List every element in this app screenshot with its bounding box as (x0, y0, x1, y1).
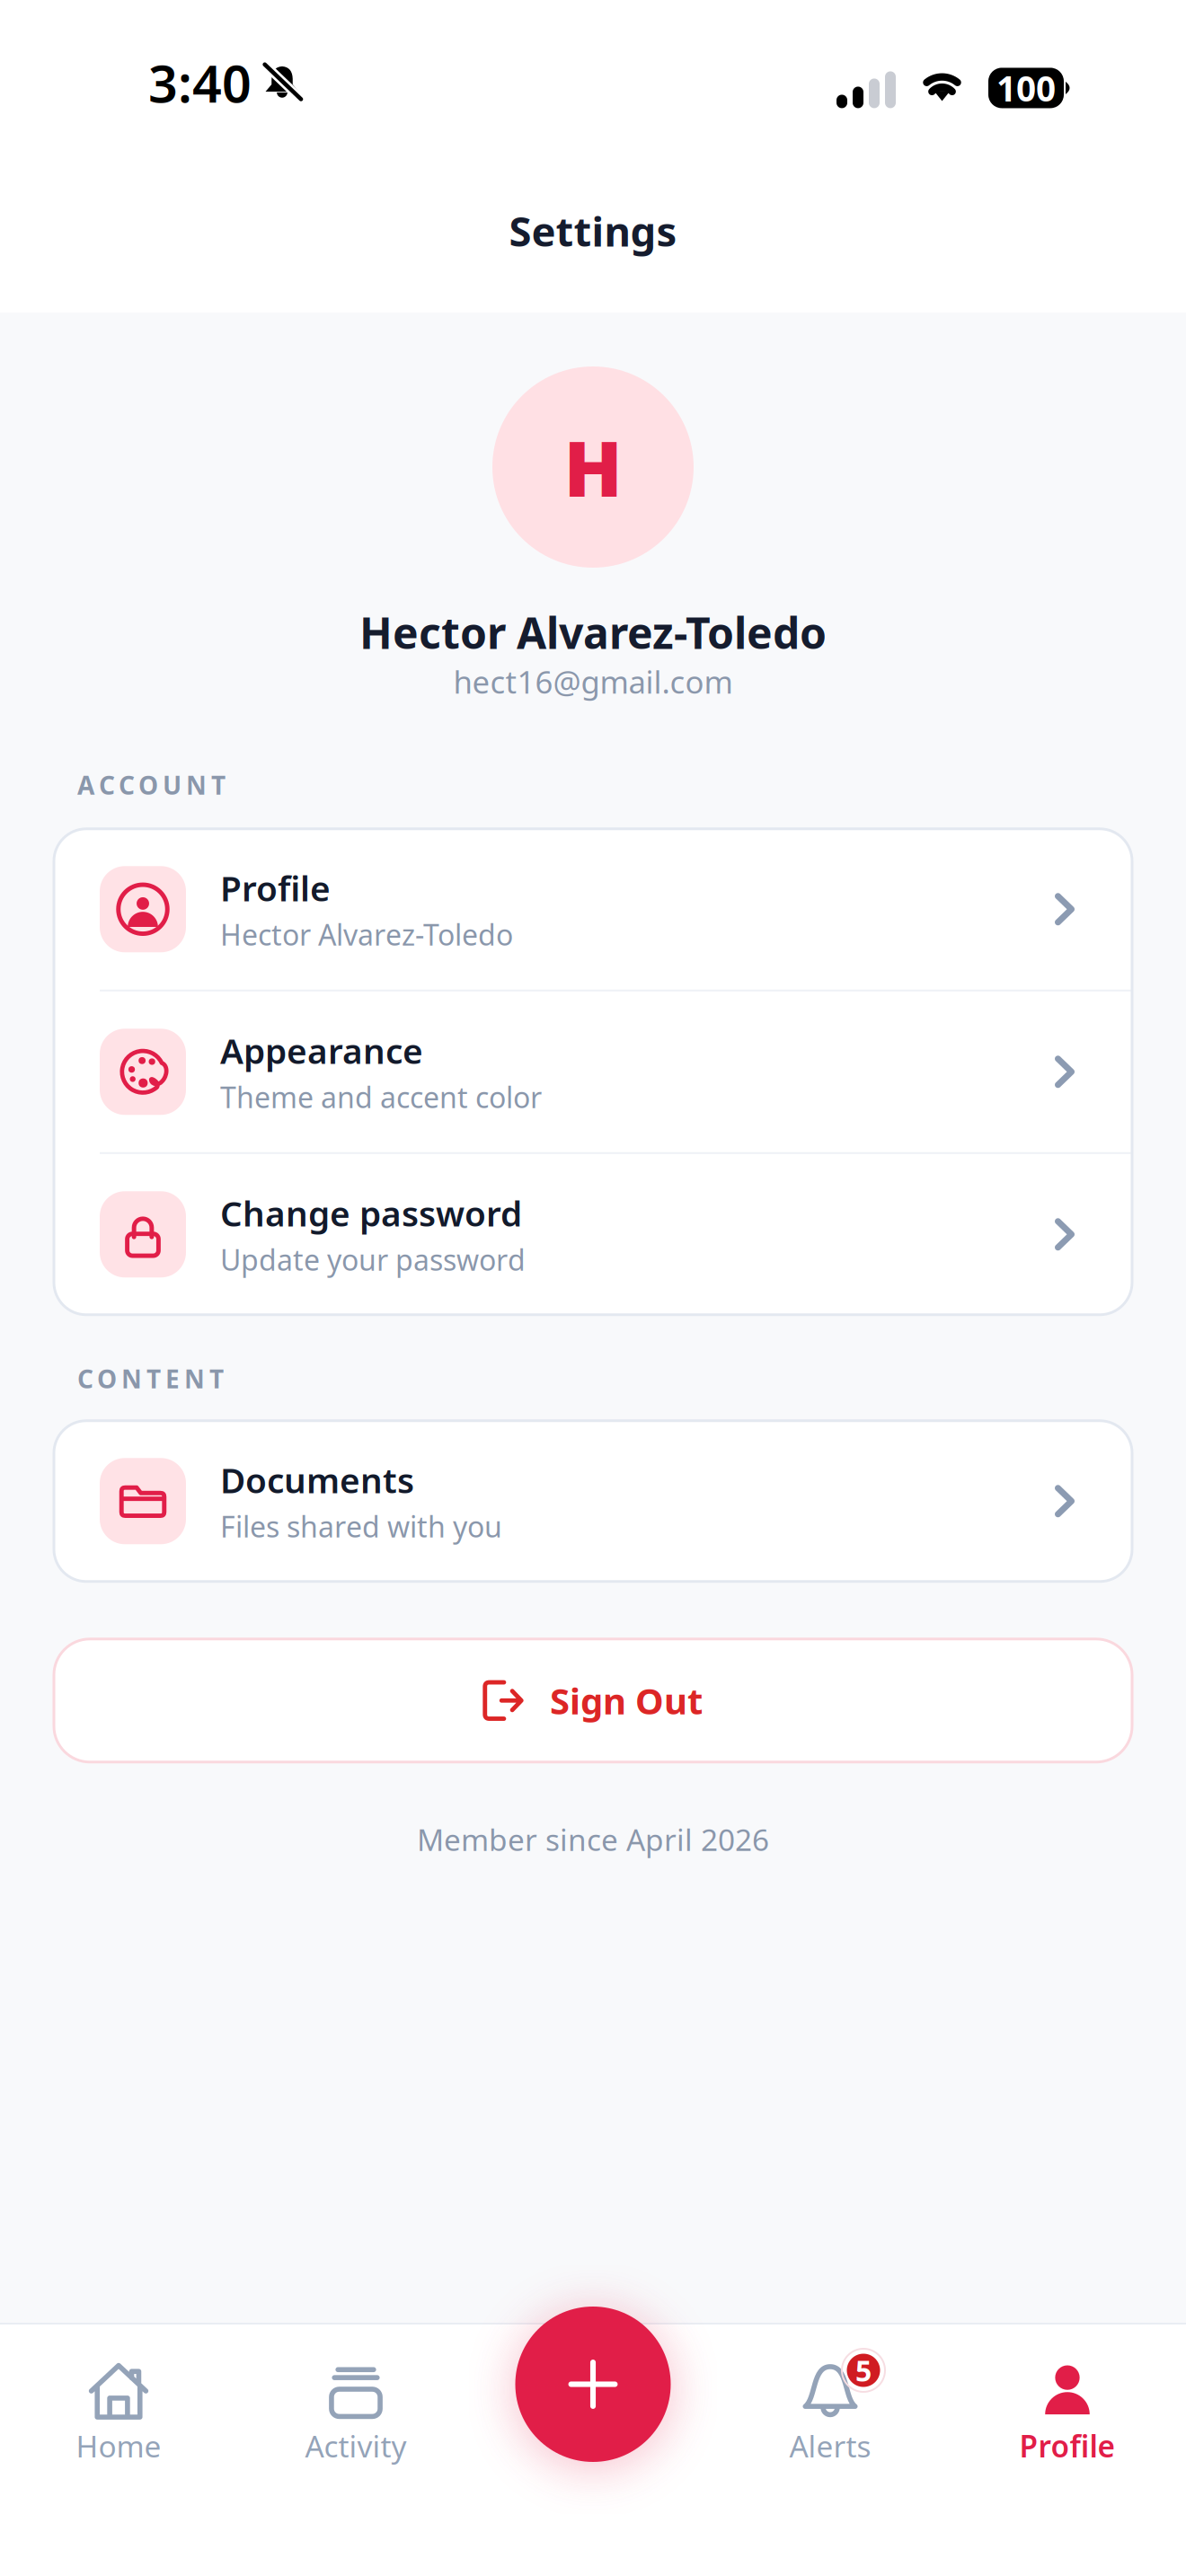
staticText: Update your password (220, 1241, 526, 1279)
staticText: 100 (996, 65, 1056, 111)
staticText: H (564, 416, 622, 518)
staticText: Files shared with you (220, 1507, 502, 1546)
button[interactable]: Documents (54, 1421, 1132, 1582)
button[interactable]: Create (515, 2307, 671, 2462)
staticText: Activity (305, 2426, 407, 2466)
staticText: Sign Out (550, 1677, 703, 1724)
button[interactable]: Sign Out (0, 1639, 1186, 1762)
button[interactable]: Profile (54, 829, 1132, 991)
button[interactable]: Change password (54, 1154, 1132, 1315)
button[interactable]: 5 (712, 2362, 949, 2466)
staticText: Settings (509, 204, 677, 258)
button[interactable]: Appearance (54, 991, 1132, 1154)
staticText: 5 (855, 2351, 872, 2389)
staticText: Hector Alvarez-Toledo (220, 915, 513, 954)
staticText: Appearance (220, 1027, 423, 1074)
staticText: ACCOUNT (77, 768, 226, 802)
staticText: hect16@gmail.com (453, 661, 733, 702)
staticText: Profile (1019, 2426, 1115, 2466)
staticText: Profile (220, 865, 331, 911)
staticText: 3:40 (148, 48, 252, 117)
staticText: Alerts (789, 2426, 871, 2466)
staticText: Hector Alvarez-Toledo (359, 604, 827, 661)
button[interactable]: Activity (237, 2362, 474, 2466)
staticText: Change password (220, 1190, 522, 1236)
staticText: Theme and accent color (220, 1078, 542, 1116)
button[interactable]: Profile (949, 2362, 1186, 2466)
staticText: Documents (220, 1457, 414, 1503)
staticText: Home (76, 2426, 161, 2466)
button[interactable]: Home (0, 2362, 237, 2466)
staticText: CONTENT (77, 1362, 224, 1395)
staticText: Member since April 2026 (417, 1820, 769, 1859)
